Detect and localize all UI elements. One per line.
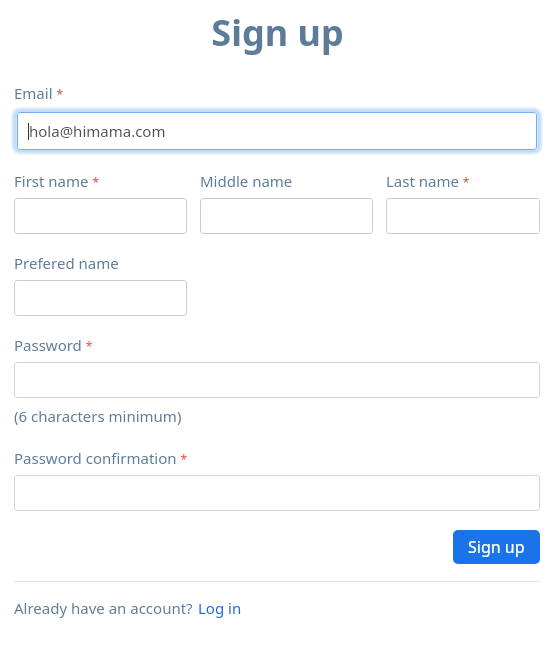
staticText: (6 characters minimum) <box>14 406 182 426</box>
staticText: Email * <box>14 83 64 103</box>
staticText: Sign up <box>468 536 525 558</box>
button[interactable]: Email input <box>17 112 537 150</box>
staticText: Middle name <box>200 171 293 191</box>
staticText: hola@himama.com <box>29 121 166 141</box>
staticText: Log in <box>198 598 242 618</box>
button[interactable]: Password confirmation input <box>14 475 540 511</box>
button[interactable]: Password input <box>14 362 540 398</box>
staticText: Sign up <box>211 8 344 57</box>
button[interactable]: Middle name input <box>200 198 373 234</box>
button[interactable]: Sign up <box>453 530 540 564</box>
button[interactable]: Prefered name input <box>14 280 187 316</box>
staticText: Password confirmation * <box>14 448 188 468</box>
staticText: Last name * <box>386 171 470 191</box>
staticText: Prefered name <box>14 253 119 273</box>
button[interactable]: Log in <box>198 598 242 618</box>
staticText: First name * <box>14 171 100 191</box>
button[interactable]: First name input <box>14 198 187 234</box>
staticText: Already have an account? <box>14 598 193 618</box>
staticText: Password * <box>14 335 93 355</box>
button[interactable]: Last name input <box>386 198 540 234</box>
